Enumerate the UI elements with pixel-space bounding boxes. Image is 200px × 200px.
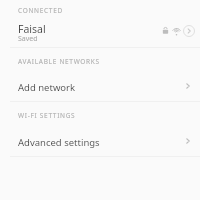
button[interactable]: Advanced settings [0,127,200,155]
staticText: Add network [18,81,76,94]
staticText: AVAILABLE NETWORKS [18,57,100,66]
staticText: Faisal [18,22,46,36]
staticText: Advanced settings [18,136,100,149]
staticText: WI-FI SETTINGS [18,111,76,120]
button[interactable]: Faisal [0,18,200,46]
staticText: Saved [18,34,38,44]
button[interactable]: Add network [0,72,200,100]
staticText: CONNECTED [18,6,63,15]
